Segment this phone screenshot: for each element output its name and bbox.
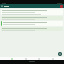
button[interactable]: Add — [58, 52, 62, 56]
button[interactable] — [1, 16, 63, 20]
button[interactable]: Home — [10, 57, 13, 60]
button[interactable] — [1, 21, 63, 26]
button[interactable] — [1, 9, 63, 15]
button[interactable]: Library — [37, 57, 40, 60]
button[interactable]: Menu — [1, 5, 3, 7]
button[interactable]: Settings — [51, 57, 54, 60]
button[interactable] — [1, 27, 63, 31]
button[interactable]: Profile — [60, 5, 63, 8]
button[interactable]: Search — [24, 57, 27, 60]
